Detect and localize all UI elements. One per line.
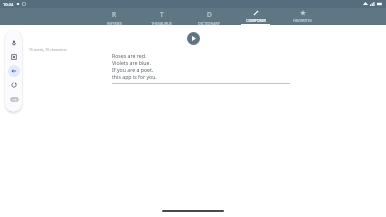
staticText: 16 words, 70 characters bbox=[29, 47, 67, 52]
staticText: T bbox=[160, 10, 164, 19]
button[interactable]: COMPOSER bbox=[232, 8, 279, 25]
staticText: FAVORITES bbox=[293, 18, 312, 23]
button[interactable]: FAVORITES bbox=[279, 8, 326, 25]
staticText: this app is for you. bbox=[112, 73, 157, 80]
staticText: RHYMES bbox=[107, 21, 122, 25]
staticText: COMPOSER bbox=[246, 18, 266, 23]
staticText: Violets are blue. bbox=[112, 59, 151, 66]
staticText: THESAURUS bbox=[151, 21, 172, 25]
button[interactable]: Undo bbox=[8, 65, 20, 77]
staticText: DICTIONARY bbox=[198, 21, 220, 25]
staticText: Roses are red. bbox=[112, 52, 147, 59]
button[interactable]: Keyboard bbox=[8, 93, 20, 105]
staticText: D bbox=[207, 10, 212, 19]
button[interactable]: Play bbox=[187, 32, 200, 45]
staticText: 10:34 bbox=[3, 2, 14, 7]
button[interactable]: D bbox=[185, 8, 232, 25]
button[interactable]: R bbox=[90, 8, 138, 25]
staticText: If you are a poet, bbox=[112, 66, 154, 73]
button[interactable]: Redo bbox=[8, 79, 20, 91]
staticText: R bbox=[112, 10, 117, 19]
button[interactable]: T bbox=[138, 8, 185, 25]
button[interactable]: Stop bbox=[8, 51, 20, 63]
button[interactable]: Microphone bbox=[8, 37, 20, 49]
